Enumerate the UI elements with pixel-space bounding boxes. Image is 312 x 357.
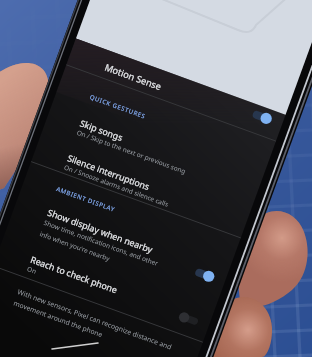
button[interactable]: Show display when nearby xyxy=(22,196,222,234)
button[interactable]: Skip songs xyxy=(50,104,250,134)
button[interactable]: Silence interruptions xyxy=(40,140,240,170)
button[interactable]: Reach to check phone xyxy=(8,248,208,280)
button[interactable]: Motion Sense master switch xyxy=(62,44,262,72)
